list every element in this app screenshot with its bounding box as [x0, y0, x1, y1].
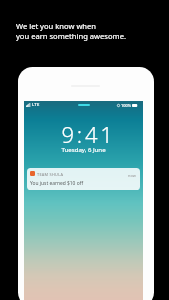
staticText: now [128, 173, 136, 178]
staticText: Tuesday, 6 June [24, 145, 143, 153]
staticText: TEAM SHULA [37, 172, 64, 177]
staticText: 100% [121, 103, 131, 108]
staticText: You just earned $10 off [30, 180, 84, 187]
staticText: LTE [32, 102, 40, 108]
button[interactable]: TEAM SHULA [27, 168, 140, 190]
staticText: 9:41 [29, 119, 148, 149]
staticText: We let you know when [16, 21, 97, 31]
staticText: you earn something awesome. [16, 31, 126, 41]
